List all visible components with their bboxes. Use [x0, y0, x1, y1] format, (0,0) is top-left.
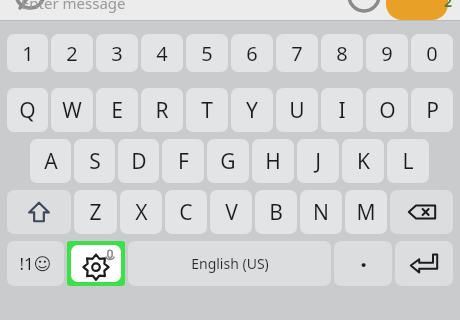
button[interactable]: A: [30, 139, 71, 183]
button[interactable]: E: [96, 88, 138, 132]
staticText: G: [220, 147, 236, 176]
button[interactable]: J: [297, 139, 339, 183]
button[interactable]: Z: [74, 190, 117, 234]
button[interactable]: B: [255, 190, 297, 234]
button[interactable]: Q: [7, 88, 48, 132]
staticText: 1: [22, 40, 34, 67]
button[interactable]: W: [51, 88, 93, 132]
staticText: 6: [246, 40, 258, 67]
button[interactable]: English (US): [128, 241, 331, 286]
button[interactable]: P: [411, 88, 453, 132]
staticText: 5: [201, 40, 213, 67]
staticText: B: [269, 198, 283, 227]
staticText: 8: [336, 40, 348, 67]
button[interactable]: V: [210, 190, 252, 234]
staticText: English (US): [191, 254, 269, 273]
button[interactable]: C: [165, 190, 207, 234]
button[interactable]: 6: [231, 34, 273, 72]
staticText: S: [89, 147, 101, 176]
staticText: Q: [19, 96, 36, 125]
staticText: 0: [426, 40, 438, 67]
staticText: D: [131, 147, 147, 176]
button[interactable]: ·: [334, 241, 392, 286]
staticText: E: [111, 96, 123, 125]
staticText: 9: [381, 40, 393, 67]
button[interactable]: U: [276, 88, 318, 132]
staticText: A: [44, 147, 58, 176]
staticText: !1☺: [19, 252, 52, 275]
staticText: O: [379, 96, 396, 125]
button[interactable]: K: [342, 139, 384, 183]
staticText: 4: [156, 40, 168, 67]
staticText: F: [178, 147, 189, 176]
staticText: M: [356, 198, 376, 227]
button[interactable]: X: [120, 190, 162, 234]
staticText: T: [201, 96, 213, 125]
button[interactable]: F: [162, 139, 204, 183]
staticText: C: [179, 198, 193, 227]
button[interactable]: 9: [366, 34, 408, 72]
button[interactable]: O: [366, 88, 408, 132]
button[interactable]: !1☺: [7, 241, 64, 286]
staticText: X: [135, 198, 148, 227]
staticText: W: [62, 96, 82, 125]
button[interactable]: L: [387, 139, 429, 183]
button[interactable]: Y: [231, 88, 273, 132]
button[interactable]: G: [207, 139, 249, 183]
button[interactable]: D: [118, 139, 159, 183]
staticText: I: [338, 96, 346, 125]
button[interactable]: 8: [321, 34, 363, 72]
button[interactable]: 2: [51, 34, 93, 72]
staticText: 7: [291, 40, 303, 67]
button[interactable]: Keyboard settings: [71, 245, 121, 282]
staticText: Y: [246, 96, 258, 125]
button[interactable]: I: [321, 88, 363, 132]
staticText: 2: [66, 40, 78, 67]
button[interactable]: 3: [96, 34, 138, 72]
staticText: K: [357, 147, 370, 176]
button[interactable]: Backspace: [390, 190, 453, 234]
staticText: Z: [89, 198, 102, 227]
button[interactable]: Enter: [395, 241, 453, 286]
staticText: P: [426, 96, 439, 125]
staticText: H: [265, 147, 281, 176]
button[interactable]: M: [345, 190, 387, 234]
button[interactable]: N: [300, 190, 342, 234]
button[interactable]: 1: [7, 34, 48, 72]
button[interactable]: S: [74, 139, 115, 183]
button[interactable]: 5: [186, 34, 228, 72]
button[interactable]: 4: [141, 34, 183, 72]
button[interactable]: Shift: [7, 190, 71, 234]
button[interactable]: T: [186, 88, 228, 132]
staticText: N: [313, 198, 329, 227]
button[interactable]: H: [252, 139, 294, 183]
button[interactable]: 7: [276, 34, 318, 72]
staticText: 2: [444, 0, 453, 11]
staticText: Enter message: [21, 0, 126, 13]
staticText: ·: [360, 247, 367, 280]
staticText: 3: [111, 40, 123, 67]
staticText: L: [402, 147, 414, 176]
staticText: J: [315, 147, 321, 176]
button[interactable]: R: [141, 88, 183, 132]
staticText: V: [225, 198, 238, 227]
staticText: R: [155, 96, 169, 125]
button[interactable]: 0: [411, 34, 453, 72]
staticText: U: [289, 96, 305, 125]
